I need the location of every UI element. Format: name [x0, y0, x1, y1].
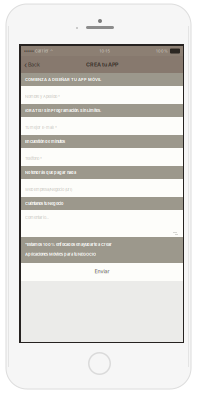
staticText: Nombre y Apellido *	[25, 94, 60, 99]
staticText: "Estamos 100% enfocados en ayudarte a Cr…	[25, 242, 112, 247]
button[interactable]: Nombre y Apellido *	[21, 86, 183, 104]
staticText: Carrier	[34, 49, 49, 53]
staticText: CREA tu APP	[86, 61, 118, 68]
staticText: Aplicaciones Móviles para tu NEGOCIO	[25, 252, 96, 257]
button[interactable]: Tu mejor E-mail *	[21, 117, 183, 135]
button[interactable]: Comentario...	[21, 210, 183, 237]
staticText: 10:15	[99, 49, 109, 53]
button[interactable]: ‹	[21, 56, 44, 73]
staticText: Enviar	[94, 268, 109, 274]
staticText: Web Empresa/Negocio (url)	[25, 187, 72, 192]
staticText: 100%	[156, 49, 168, 53]
button[interactable]: Enviar	[21, 263, 183, 281]
staticText: •••••	[24, 49, 34, 53]
staticText: No tendrás que pagar nada	[25, 170, 76, 175]
staticText: ⌃	[49, 49, 53, 53]
staticText: Tu mejor E-mail *	[25, 125, 57, 130]
staticText: ‹	[24, 60, 27, 69]
staticText: Teléfono *	[25, 156, 42, 161]
staticText: Comentario...	[25, 215, 49, 220]
staticText: ¡GRATIS! Sin Programación. Sin Límites.	[25, 108, 101, 113]
button[interactable]: Web Empresa/Negocio (url)	[21, 179, 183, 197]
staticText: En cuestión de minutos	[25, 139, 65, 144]
staticText: Back	[28, 61, 40, 68]
staticText: Cuéntanos tu Negocio	[25, 201, 63, 206]
staticText: COMIENZA A DISEÑAR TU APP MÓVIL	[25, 77, 101, 82]
